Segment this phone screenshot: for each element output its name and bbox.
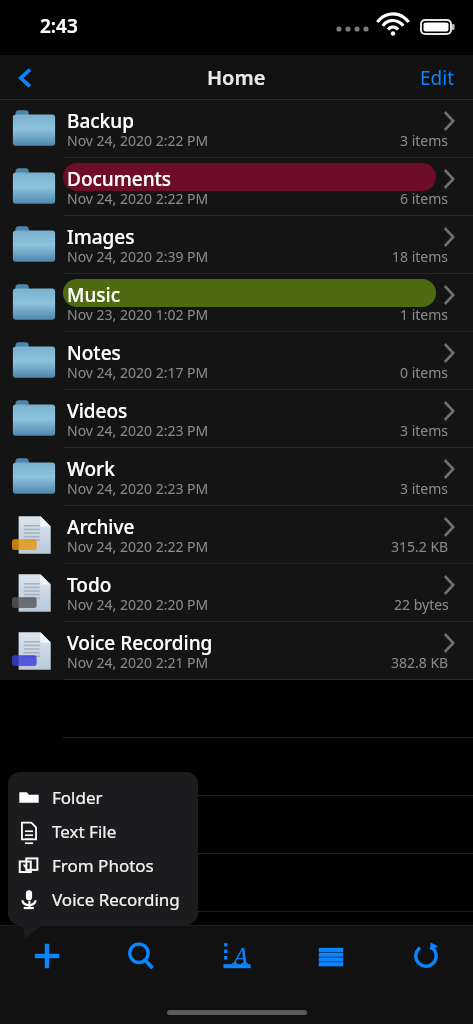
button[interactable]: Text size <box>188 925 283 987</box>
staticText: Home <box>207 64 266 91</box>
button[interactable]: Text File <box>8 814 198 848</box>
button[interactable]: Add <box>0 925 94 987</box>
button[interactable]: Archive <box>0 506 473 564</box>
staticText: 3 items <box>400 131 449 150</box>
staticText: Images <box>67 224 135 250</box>
staticText: Notes <box>67 340 121 366</box>
staticText: Voice Recording <box>67 630 213 656</box>
button[interactable]: Search <box>94 925 188 987</box>
staticText: 1 items <box>400 305 449 324</box>
staticText: Documents <box>67 166 172 192</box>
staticText: 315.2 KB <box>391 537 449 556</box>
staticText: Nov 24, 2020 2:23 PM <box>67 479 209 498</box>
button[interactable]: Videos <box>0 390 473 448</box>
button[interactable]: Voice Recording <box>8 882 198 916</box>
button[interactable]: Back <box>0 55 52 100</box>
staticText: 18 items <box>392 247 449 266</box>
button[interactable]: Images <box>0 216 473 274</box>
button[interactable]: Todo <box>0 564 473 622</box>
staticText: Text File <box>52 820 117 843</box>
button[interactable]: Menu <box>283 925 378 987</box>
staticText: Music <box>67 282 121 308</box>
button[interactable]: Documents <box>0 158 473 216</box>
button[interactable]: Voice Recording <box>0 622 473 680</box>
staticText: 22 bytes <box>394 595 449 614</box>
staticText: Archive <box>67 514 135 540</box>
staticText: Videos <box>67 398 128 424</box>
staticText: 3 items <box>400 479 449 498</box>
button[interactable]: Refresh <box>378 925 473 987</box>
staticText: A <box>233 940 249 970</box>
staticText: 3 items <box>400 421 449 440</box>
button[interactable]: Notes <box>0 332 473 390</box>
staticText: Nov 24, 2020 2:21 PM <box>67 653 209 672</box>
staticText: Backup <box>67 108 134 134</box>
button[interactable]: Music <box>0 274 473 332</box>
staticText: From Photos <box>52 854 154 877</box>
button[interactable]: Backup <box>0 100 473 158</box>
button[interactable]: Edit <box>402 55 473 100</box>
staticText: Nov 23, 2020 1:02 PM <box>67 305 209 324</box>
staticText: Nov 24, 2020 2:22 PM <box>67 131 209 150</box>
staticText: Voice Recording <box>52 888 180 911</box>
staticText: Nov 24, 2020 2:20 PM <box>67 595 209 614</box>
button[interactable]: Folder <box>8 780 198 814</box>
staticText: 0 items <box>400 363 449 382</box>
staticText: Nov 24, 2020 2:23 PM <box>67 421 209 440</box>
staticText: Nov 24, 2020 2:22 PM <box>67 189 209 208</box>
staticText: Todo <box>67 572 112 598</box>
staticText: 2:43 <box>40 13 78 39</box>
staticText: Work <box>67 456 115 482</box>
staticText: Folder <box>52 786 103 809</box>
staticText: Edit <box>420 65 455 91</box>
staticText: Nov 24, 2020 2:17 PM <box>67 363 209 382</box>
staticText: 6 items <box>400 189 449 208</box>
staticText: Nov 24, 2020 2:22 PM <box>67 537 209 556</box>
button[interactable]: Work <box>0 448 473 506</box>
staticText: 382.8 KB <box>391 653 449 672</box>
button[interactable]: From Photos <box>8 848 198 882</box>
staticText: Nov 24, 2020 2:39 PM <box>67 247 209 266</box>
